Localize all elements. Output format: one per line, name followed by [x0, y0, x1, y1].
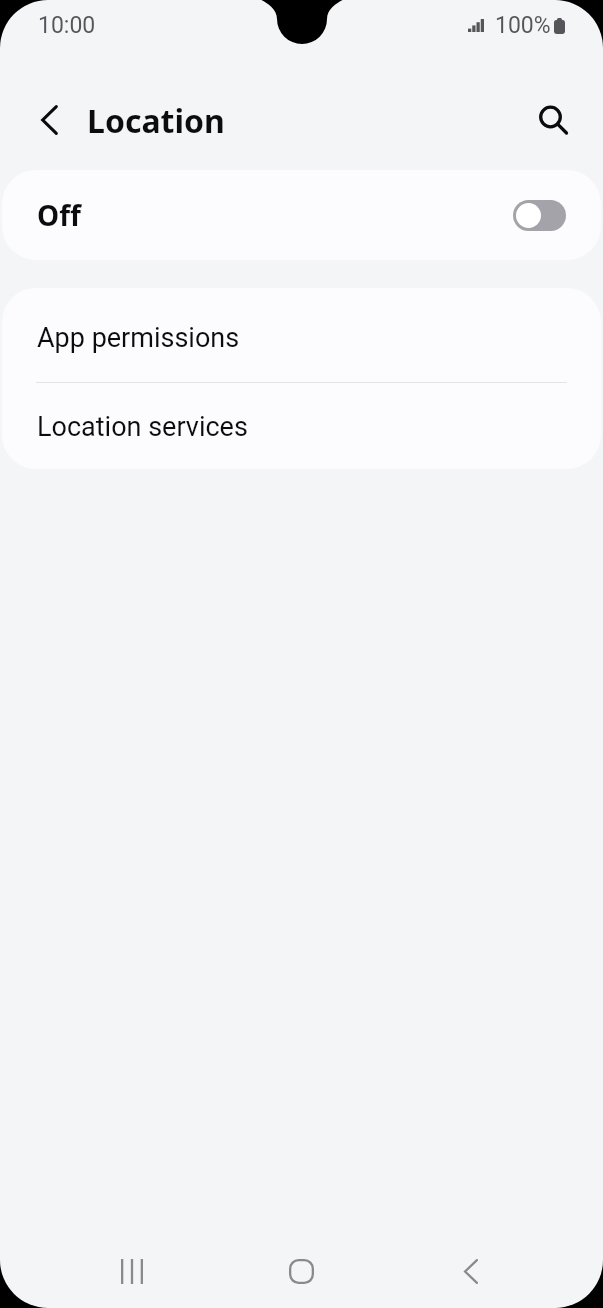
- button[interactable]: Off: [2, 170, 601, 260]
- button[interactable]: Home: [216, 1234, 386, 1308]
- button[interactable]: Navigate up: [25, 96, 73, 144]
- staticText: Location services: [37, 411, 248, 443]
- button[interactable]: Back: [386, 1234, 556, 1308]
- button[interactable]: Location services: [2, 383, 601, 469]
- staticText: 100%: [495, 12, 551, 39]
- button[interactable]: Recent apps: [47, 1234, 216, 1308]
- button[interactable]: App permissions: [2, 288, 601, 382]
- staticText: Off: [37, 196, 81, 234]
- staticText: App permissions: [37, 322, 240, 354]
- button[interactable]: Search: [530, 98, 578, 146]
- staticText: Location: [87, 99, 225, 143]
- staticText: 10:00: [38, 12, 96, 39]
